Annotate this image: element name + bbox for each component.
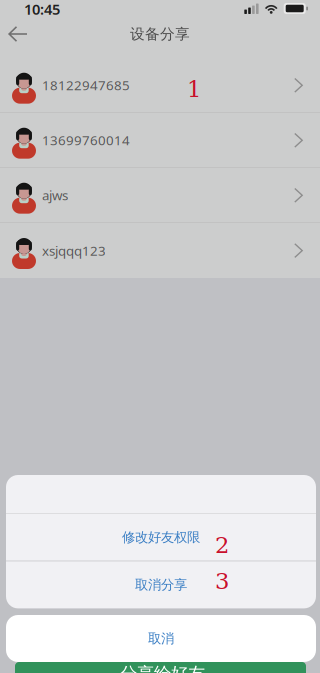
staticText: 10:45 — [24, 0, 60, 19]
button[interactable]: 18122947685 — [0, 58, 320, 113]
button[interactable]: 取消分享 — [6, 561, 316, 608]
staticText: xsjqqq123 — [42, 242, 106, 259]
button[interactable]: Back — [0, 23, 36, 45]
staticText: 2 — [215, 532, 229, 558]
button[interactable]: 修改好友权限 — [6, 514, 316, 561]
staticText: 3 — [215, 568, 229, 594]
staticText: 13699760014 — [42, 131, 130, 149]
staticText: 1 — [187, 76, 201, 102]
button[interactable]: ajws — [0, 168, 320, 223]
button[interactable]: 13699760014 — [0, 113, 320, 168]
button[interactable]: 分享给好友 — [15, 662, 306, 673]
staticText: ajws — [42, 186, 68, 204]
staticText: 分享给好友 — [120, 663, 205, 673]
staticText: 设备分享 — [130, 25, 190, 43]
staticText: 18122947685 — [42, 76, 130, 94]
button[interactable]: 取消 — [6, 615, 316, 662]
button[interactable]: xsjqqq123 — [0, 223, 320, 278]
staticText: 取消分享 — [135, 577, 187, 593]
staticText: 取消 — [148, 630, 174, 647]
staticText: 修改好友权限 — [122, 529, 200, 545]
